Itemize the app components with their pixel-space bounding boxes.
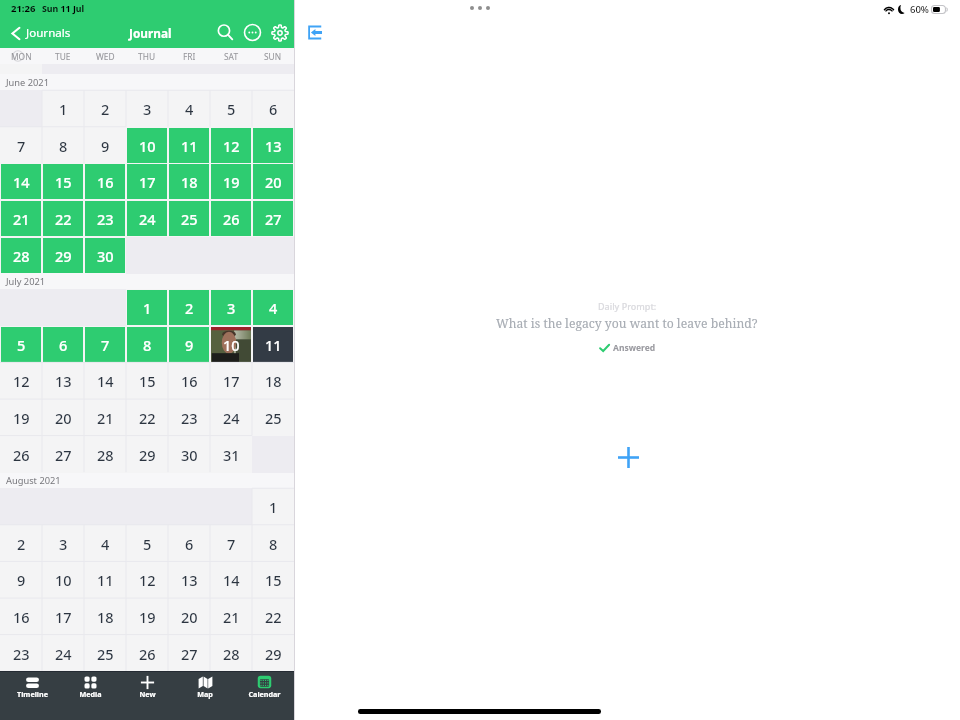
button[interactable]: 8: [42, 127, 84, 164]
button[interactable]: 19: [210, 163, 252, 200]
button[interactable]: 8: [252, 525, 294, 562]
button[interactable]: More options: [240, 20, 265, 45]
button[interactable]: 14: [0, 163, 42, 200]
button[interactable]: Settings: [267, 20, 292, 45]
button[interactable]: 11: [84, 561, 126, 598]
button[interactable]: 6: [252, 90, 294, 127]
button[interactable]: 2: [84, 90, 126, 127]
button[interactable]: 30: [0, 671, 42, 708]
button[interactable]: 17: [210, 362, 252, 399]
button[interactable]: 18: [168, 163, 210, 200]
button[interactable]: 11: [252, 326, 294, 363]
button[interactable]: 1: [42, 90, 84, 127]
button[interactable]: 12: [210, 127, 252, 164]
button[interactable]: 29: [252, 635, 294, 672]
button[interactable]: 20: [252, 163, 294, 200]
button[interactable]: 7: [0, 127, 42, 164]
button[interactable]: 19: [0, 399, 42, 436]
button[interactable]: 21: [0, 200, 42, 237]
button[interactable]: 13: [252, 127, 294, 164]
button[interactable]: 27: [42, 436, 84, 473]
button[interactable]: 23: [0, 635, 42, 672]
button[interactable]: 9: [0, 561, 42, 598]
button[interactable]: Calendar: [237, 672, 291, 720]
button[interactable]: 5: [210, 90, 252, 127]
button[interactable]: 31: [210, 436, 252, 473]
button[interactable]: 31: [42, 671, 84, 708]
button[interactable]: 15: [42, 163, 84, 200]
button[interactable]: New: [120, 672, 174, 720]
button[interactable]: 3: [210, 289, 252, 326]
button[interactable]: 26: [0, 436, 42, 473]
button[interactable]: 29: [42, 237, 84, 274]
button[interactable]: 10: [210, 326, 252, 363]
button[interactable]: 13: [42, 362, 84, 399]
button[interactable]: 10: [126, 127, 168, 164]
button[interactable]: 22: [42, 200, 84, 237]
button[interactable]: 8: [126, 326, 168, 363]
button[interactable]: 12: [0, 362, 42, 399]
button[interactable]: 13: [168, 561, 210, 598]
button[interactable]: 21: [210, 598, 252, 635]
button[interactable]: 16: [84, 163, 126, 200]
button[interactable]: 4: [252, 289, 294, 326]
button[interactable]: 17: [42, 598, 84, 635]
button[interactable]: 4: [84, 525, 126, 562]
button[interactable]: Media: [63, 672, 117, 720]
button[interactable]: 1: [252, 488, 294, 525]
button[interactable]: 24: [210, 399, 252, 436]
button[interactable]: 24: [42, 635, 84, 672]
button[interactable]: 22: [252, 598, 294, 635]
button[interactable]: 6: [42, 326, 84, 363]
button[interactable]: 25: [168, 200, 210, 237]
button[interactable]: 24: [126, 200, 168, 237]
button[interactable]: 29: [126, 436, 168, 473]
button[interactable]: 10: [42, 561, 84, 598]
button[interactable]: 27: [168, 635, 210, 672]
button[interactable]: 16: [168, 362, 210, 399]
button[interactable]: 19: [126, 598, 168, 635]
button[interactable]: 30: [84, 237, 126, 274]
button[interactable]: 14: [210, 561, 252, 598]
button[interactable]: 5: [0, 326, 42, 363]
button[interactable]: 3: [42, 525, 84, 562]
button[interactable]: 20: [168, 598, 210, 635]
button[interactable]: 9: [84, 127, 126, 164]
button[interactable]: 22: [126, 399, 168, 436]
button[interactable]: 2: [0, 525, 42, 562]
button[interactable]: Journals: [0, 20, 77, 46]
button[interactable]: Timeline: [5, 672, 59, 720]
button[interactable]: 2: [168, 289, 210, 326]
button[interactable]: 12: [126, 561, 168, 598]
button[interactable]: Map: [178, 672, 232, 720]
button[interactable]: 16: [0, 598, 42, 635]
button[interactable]: 30: [168, 436, 210, 473]
button[interactable]: Hide sidebar: [305, 23, 323, 41]
button[interactable]: 23: [84, 200, 126, 237]
button[interactable]: 9: [168, 326, 210, 363]
button[interactable]: 15: [126, 362, 168, 399]
button[interactable]: 14: [84, 362, 126, 399]
button[interactable]: 27: [252, 200, 294, 237]
button[interactable]: 26: [210, 200, 252, 237]
button[interactable]: 28: [0, 237, 42, 274]
button[interactable]: 28: [210, 635, 252, 672]
button[interactable]: 25: [84, 635, 126, 672]
button[interactable]: 26: [126, 635, 168, 672]
button[interactable]: 7: [210, 525, 252, 562]
button[interactable]: 3: [126, 90, 168, 127]
button[interactable]: 7: [84, 326, 126, 363]
button[interactable]: 18: [84, 598, 126, 635]
button[interactable]: 28: [84, 436, 126, 473]
button[interactable]: 17: [126, 163, 168, 200]
button[interactable]: 15: [252, 561, 294, 598]
button[interactable]: New entry: [616, 445, 640, 469]
button[interactable]: Search: [213, 20, 238, 45]
button[interactable]: 21: [84, 399, 126, 436]
button[interactable]: 1: [126, 289, 168, 326]
button[interactable]: 6: [168, 525, 210, 562]
button[interactable]: 11: [168, 127, 210, 164]
button[interactable]: 5: [126, 525, 168, 562]
button[interactable]: 25: [252, 399, 294, 436]
button[interactable]: 23: [168, 399, 210, 436]
